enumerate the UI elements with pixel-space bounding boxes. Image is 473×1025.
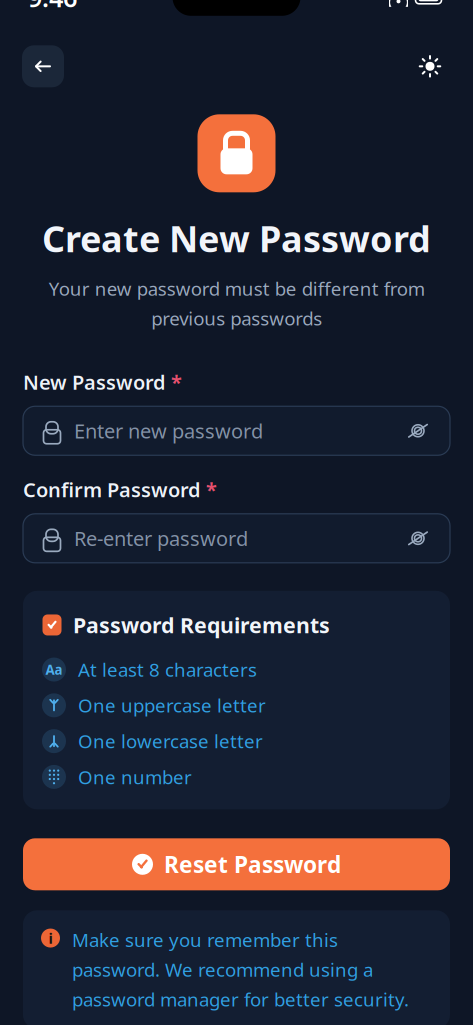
button[interactable]: Reset Password — [23, 838, 450, 890]
staticText: One uppercase letter — [78, 693, 266, 718]
staticText: Create New Password — [42, 214, 431, 262]
staticText: Password Requirements — [73, 611, 330, 639]
staticText: * — [171, 369, 182, 395]
staticText: New Password — [23, 369, 166, 395]
staticText: 9:46 — [28, 0, 77, 14]
staticText: Enter new password — [74, 417, 263, 444]
staticText: Reset Password — [164, 849, 341, 879]
staticText: Make sure you remember this password. We… — [72, 927, 409, 1012]
button[interactable]: Back — [22, 45, 64, 87]
staticText: i — [48, 928, 52, 948]
staticText: Confirm Password — [23, 476, 201, 503]
button[interactable]: Enter new password — [23, 406, 450, 455]
button[interactable]: Re-enter password — [23, 514, 450, 563]
staticText: Re-enter password — [74, 525, 248, 552]
staticText: Your new password must be different from… — [48, 276, 424, 331]
button[interactable]: Toggle theme — [409, 45, 451, 87]
staticText: Aa — [45, 661, 62, 678]
staticText: At least 8 characters — [78, 657, 257, 682]
staticText: One number — [78, 764, 192, 789]
staticText: * — [206, 476, 217, 503]
staticText: One lowercase letter — [78, 729, 263, 753]
